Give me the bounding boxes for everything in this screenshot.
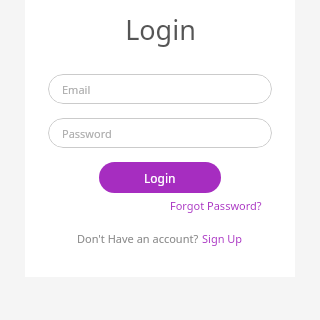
staticText: Login — [125, 11, 196, 48]
staticText: Sign Up — [202, 231, 243, 246]
button[interactable]: Sign Up — [202, 231, 243, 246]
button[interactable]: Forgot Password? — [170, 198, 262, 213]
staticText: Forgot Password? — [170, 198, 262, 213]
staticText: Login — [144, 170, 176, 186]
staticText: Password — [62, 126, 112, 141]
button[interactable]: Login — [99, 162, 221, 193]
button[interactable]: Email — [48, 74, 272, 104]
staticText: Don't Have an account? — [77, 231, 202, 246]
staticText: Email — [62, 82, 91, 97]
button[interactable]: Password — [48, 118, 272, 148]
